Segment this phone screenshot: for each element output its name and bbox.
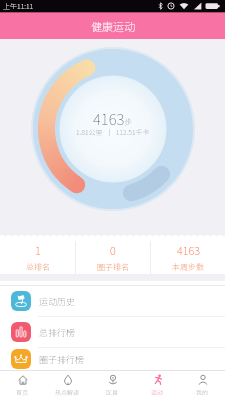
staticText: 上午11:11: [3, 1, 34, 11]
staticText: 本周步数: [172, 261, 204, 273]
staticText: 1.81公里 ｜ 112.51千卡: [76, 127, 150, 137]
button[interactable]: 运动: [135, 371, 180, 400]
staticText: 运动历史: [39, 295, 76, 308]
staticText: 总排行榜: [39, 326, 76, 339]
staticText: 热点解读: [55, 388, 80, 397]
button[interactable]: 总排行榜: [0, 317, 225, 347]
button[interactable]: 我的: [180, 371, 225, 400]
button[interactable]: 1: [0, 241, 75, 274]
staticText: 1: [35, 242, 41, 258]
staticText: 0: [110, 242, 116, 258]
staticText: 4163步: [93, 108, 133, 130]
button[interactable]: 区县: [90, 371, 135, 400]
staticText: 圈子排名: [97, 261, 129, 273]
staticText: 健康运动: [91, 18, 135, 34]
staticText: 圈子排行榜: [39, 353, 85, 366]
staticText: 首页: [16, 388, 29, 397]
staticText: 我的: [196, 388, 209, 397]
staticText: 运动: [151, 388, 164, 397]
button[interactable]: 首页: [0, 371, 45, 400]
staticText: 总排名: [26, 261, 50, 273]
button[interactable]: 圈子排行榜: [0, 348, 225, 370]
staticText: 4163: [177, 242, 200, 258]
staticText: 区县: [106, 388, 119, 397]
button[interactable]: 4163: [151, 241, 225, 274]
button[interactable]: 运动历史: [0, 286, 225, 316]
button[interactable]: 0: [76, 241, 150, 274]
button[interactable]: 热点解读: [45, 371, 90, 400]
